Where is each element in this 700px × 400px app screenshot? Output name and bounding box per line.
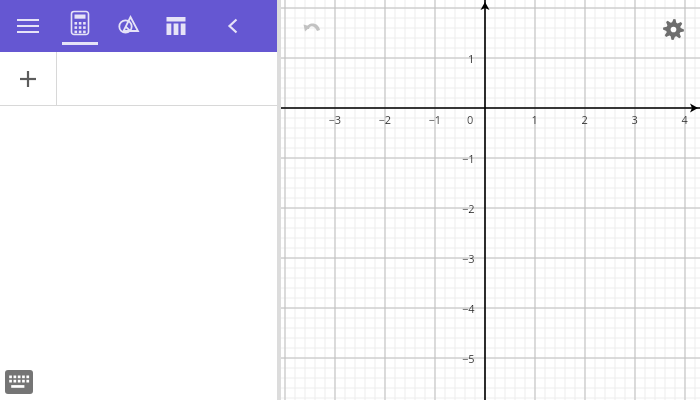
button[interactable]: Menu	[0, 0, 56, 52]
button[interactable]: Collapse panel	[210, 0, 254, 52]
button[interactable]: Undo	[297, 12, 329, 44]
button[interactable]: Keyboard	[5, 370, 33, 394]
button[interactable]: Calculator	[56, 0, 104, 52]
button[interactable]: Settings	[658, 14, 688, 44]
button[interactable]: Table	[152, 0, 200, 52]
button[interactable]: Geometry	[104, 0, 152, 52]
button[interactable]: Add input	[0, 52, 280, 105]
button[interactable]: Add input	[0, 52, 56, 105]
